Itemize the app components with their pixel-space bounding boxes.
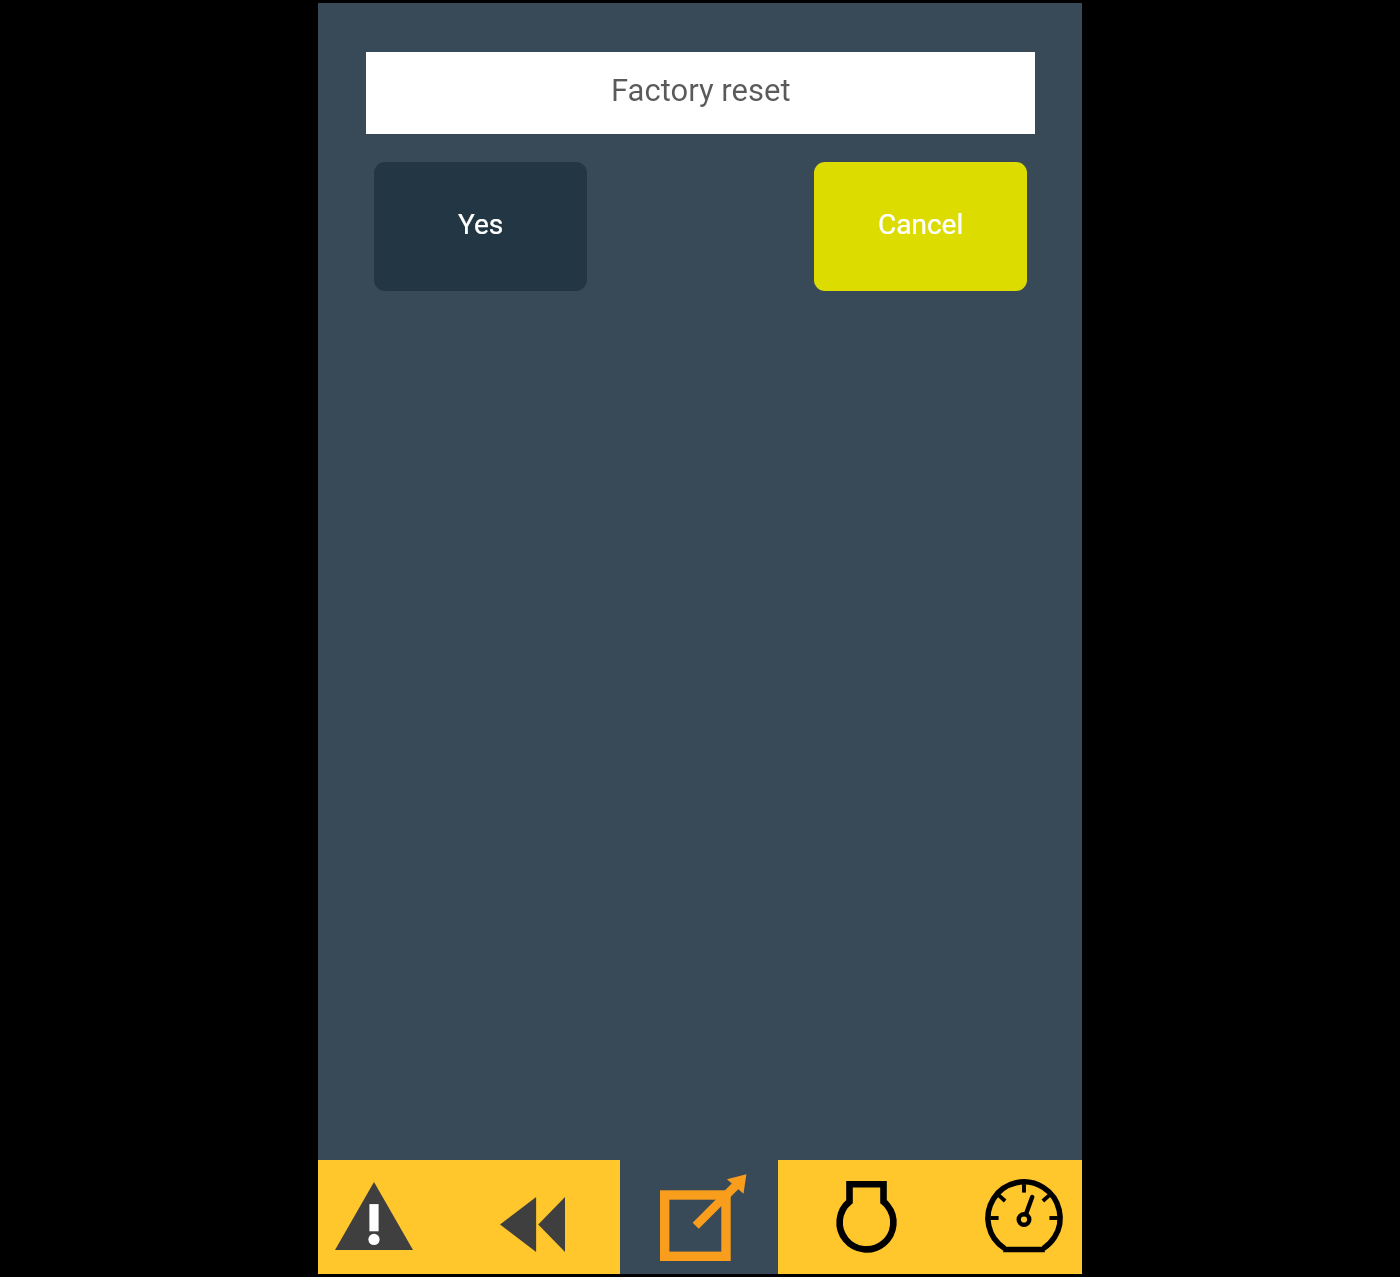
staticText: Factory reset [611,72,791,108]
button[interactable]: Cancel [814,162,1027,291]
staticText: Cancel [878,208,964,241]
button[interactable]: Speed gauge [970,1160,1082,1274]
button[interactable]: Open external [644,1160,756,1274]
button[interactable]: Warning [318,1160,430,1274]
button[interactable]: Yes [374,162,587,291]
staticText: Yes [458,208,504,241]
button[interactable]: Factory reset [366,52,1035,134]
button[interactable]: Light [807,1160,919,1274]
button[interactable]: Rewind [481,1160,593,1274]
